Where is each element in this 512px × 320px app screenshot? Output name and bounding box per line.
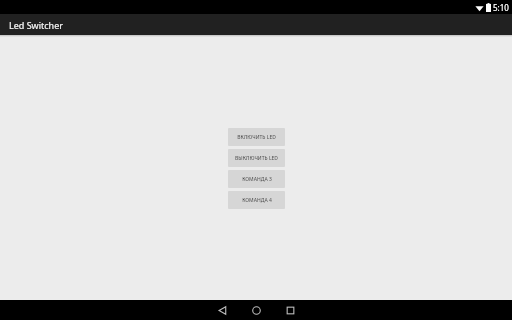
staticText: 5:10 <box>493 2 509 13</box>
button[interactable]: Recent apps <box>273 300 307 320</box>
button[interactable]: КОМАНДА 4 <box>228 191 285 209</box>
staticText: Led Switcher <box>9 19 63 31</box>
staticText: КОМАНДА 4 <box>242 197 272 204</box>
button[interactable]: ВКЛЮЧИТЬ LED <box>228 128 285 146</box>
button[interactable]: ВЫКЛЮЧИТЬ LED <box>228 149 285 167</box>
button[interactable]: КОМАНДА 3 <box>228 170 285 188</box>
staticText: ВКЛЮЧИТЬ LED <box>237 134 276 141</box>
button[interactable]: Back <box>205 300 239 320</box>
staticText: ВЫКЛЮЧИТЬ LED <box>235 155 278 162</box>
staticText: КОМАНДА 3 <box>242 176 272 183</box>
button[interactable]: Home <box>239 300 273 320</box>
